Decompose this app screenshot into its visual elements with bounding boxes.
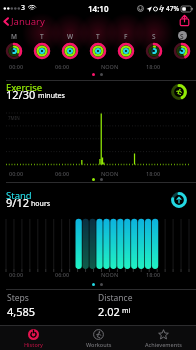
staticText: T	[96, 32, 100, 41]
staticText: 00:00	[9, 271, 24, 278]
button[interactable]: S	[168, 30, 196, 58]
button[interactable]: Share	[178, 14, 191, 27]
staticText: hours	[31, 199, 51, 209]
staticText: NOON	[101, 63, 119, 70]
staticText: mi	[122, 306, 131, 316]
button[interactable]: Exercise	[0, 82, 196, 108]
staticText: Achievements	[145, 341, 182, 348]
button[interactable]: M	[0, 30, 28, 58]
staticText: 00:00	[9, 170, 24, 177]
staticText: January	[11, 15, 45, 28]
button[interactable]: F	[112, 30, 140, 58]
staticText: S	[152, 32, 156, 41]
staticText: T	[40, 32, 44, 41]
staticText: History	[24, 341, 43, 348]
staticText: 2.02	[98, 304, 120, 317]
staticText: 9/12	[6, 195, 29, 210]
button[interactable]: Achievements	[131, 326, 196, 350]
button[interactable]: January	[0, 14, 51, 29]
staticText: NOON	[101, 271, 119, 278]
button[interactable]: T	[84, 30, 112, 58]
button[interactable]: S	[140, 30, 168, 58]
staticText: 4,585	[7, 304, 36, 317]
staticText: Distance	[98, 292, 133, 304]
staticText: 06:00	[55, 170, 70, 177]
staticText: 18:00	[146, 170, 161, 177]
staticText: minutes	[38, 91, 65, 101]
button[interactable]: T	[28, 30, 56, 58]
staticText: 14:10	[88, 3, 109, 14]
staticText: 06:00	[55, 63, 70, 70]
staticText: 7MIN	[8, 115, 20, 121]
staticText: 3	[21, 3, 26, 13]
button[interactable]: Stand	[0, 190, 196, 216]
button[interactable]: Workouts	[66, 326, 131, 350]
button[interactable]: Distance	[98, 291, 196, 317]
staticText: 18:00	[146, 271, 161, 278]
staticText: 06:00	[55, 271, 70, 278]
staticText: Workouts	[86, 341, 112, 348]
staticText: 18:00	[146, 63, 161, 70]
staticText: Stand	[6, 189, 32, 202]
staticText: 00:00	[9, 63, 24, 70]
staticText: Steps	[7, 292, 29, 304]
button[interactable]: W	[56, 30, 84, 58]
button[interactable]: History	[0, 326, 66, 350]
staticText: 47%	[166, 4, 179, 13]
staticText: M	[11, 32, 17, 41]
staticText: 12/30	[6, 87, 36, 102]
button[interactable]: Steps	[0, 291, 98, 317]
staticText: F	[124, 32, 128, 41]
staticText: S	[180, 32, 184, 41]
staticText: Exercise	[6, 81, 43, 94]
staticText: W	[67, 32, 74, 41]
staticText: NOON	[101, 170, 119, 177]
